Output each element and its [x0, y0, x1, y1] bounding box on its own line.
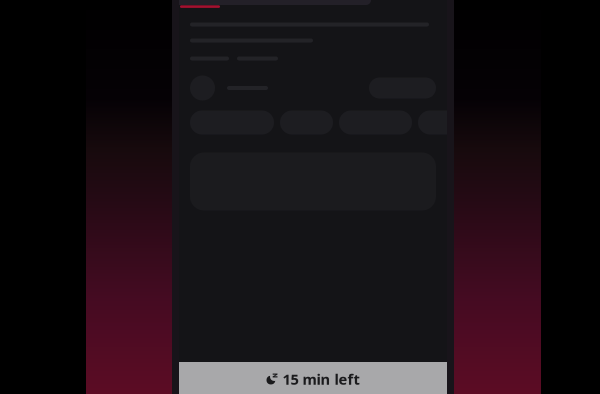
staticText: 15 min left [282, 369, 359, 389]
